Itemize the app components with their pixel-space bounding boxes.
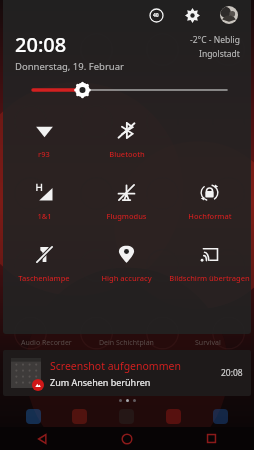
button[interactable]: Back [0, 427, 84, 450]
staticText: r93 [38, 149, 50, 159]
button[interactable]: High accuracy [85, 237, 168, 299]
staticText: Screenshot aufgenommen [50, 359, 181, 373]
button[interactable]: Settings [180, 3, 204, 27]
button[interactable]: User profile [217, 3, 241, 27]
button[interactable]: -2°C - Neblig [190, 31, 240, 60]
button[interactable]: Flugmodus [85, 175, 168, 237]
button[interactable]: Bildschirm übertragen [168, 237, 251, 299]
staticText: High accuracy [101, 273, 152, 283]
button[interactable]: Battery saver [145, 4, 167, 26]
button[interactable]: Bluetooth [85, 113, 168, 175]
button[interactable] [72, 409, 87, 424]
staticText: Audio Recorder [21, 338, 72, 348]
staticText: Bildschirm übertragen [169, 273, 250, 283]
staticText: Bluetooth [109, 149, 145, 159]
staticText: 20:08 [221, 367, 243, 379]
button[interactable]: Recent apps [169, 427, 254, 450]
staticText: 20:08 [15, 31, 67, 58]
staticText: -2°C - Neblig [190, 34, 240, 46]
button[interactable]: 1&1 [3, 175, 85, 237]
staticText: 40 [153, 12, 159, 19]
staticText: Ingolstadt [199, 48, 240, 60]
staticText: Donnerstag, 19. Februar [15, 60, 124, 73]
staticText: Zum Ansehen berühren [50, 376, 151, 388]
staticText: Survival [195, 338, 221, 348]
staticText: Taschenlampe [18, 273, 70, 283]
button[interactable] [26, 409, 41, 424]
staticText: Flugmodus [106, 211, 147, 221]
staticText: 1&1 [37, 211, 52, 221]
button[interactable]: Taschenlampe [3, 237, 85, 299]
button[interactable]: Hochformat [168, 175, 251, 237]
button[interactable]: 20:08 [15, 31, 190, 73]
button[interactable]: Brightness [3, 73, 251, 107]
staticText: Dein Schichtplan [99, 338, 154, 348]
button[interactable]: Screenshot aufgenommen [3, 350, 251, 396]
button[interactable]: Home [84, 427, 169, 450]
staticText: Hochformat [188, 211, 232, 221]
button[interactable] [213, 409, 228, 424]
button[interactable] [166, 409, 181, 424]
button[interactable]: r93 [3, 113, 85, 175]
